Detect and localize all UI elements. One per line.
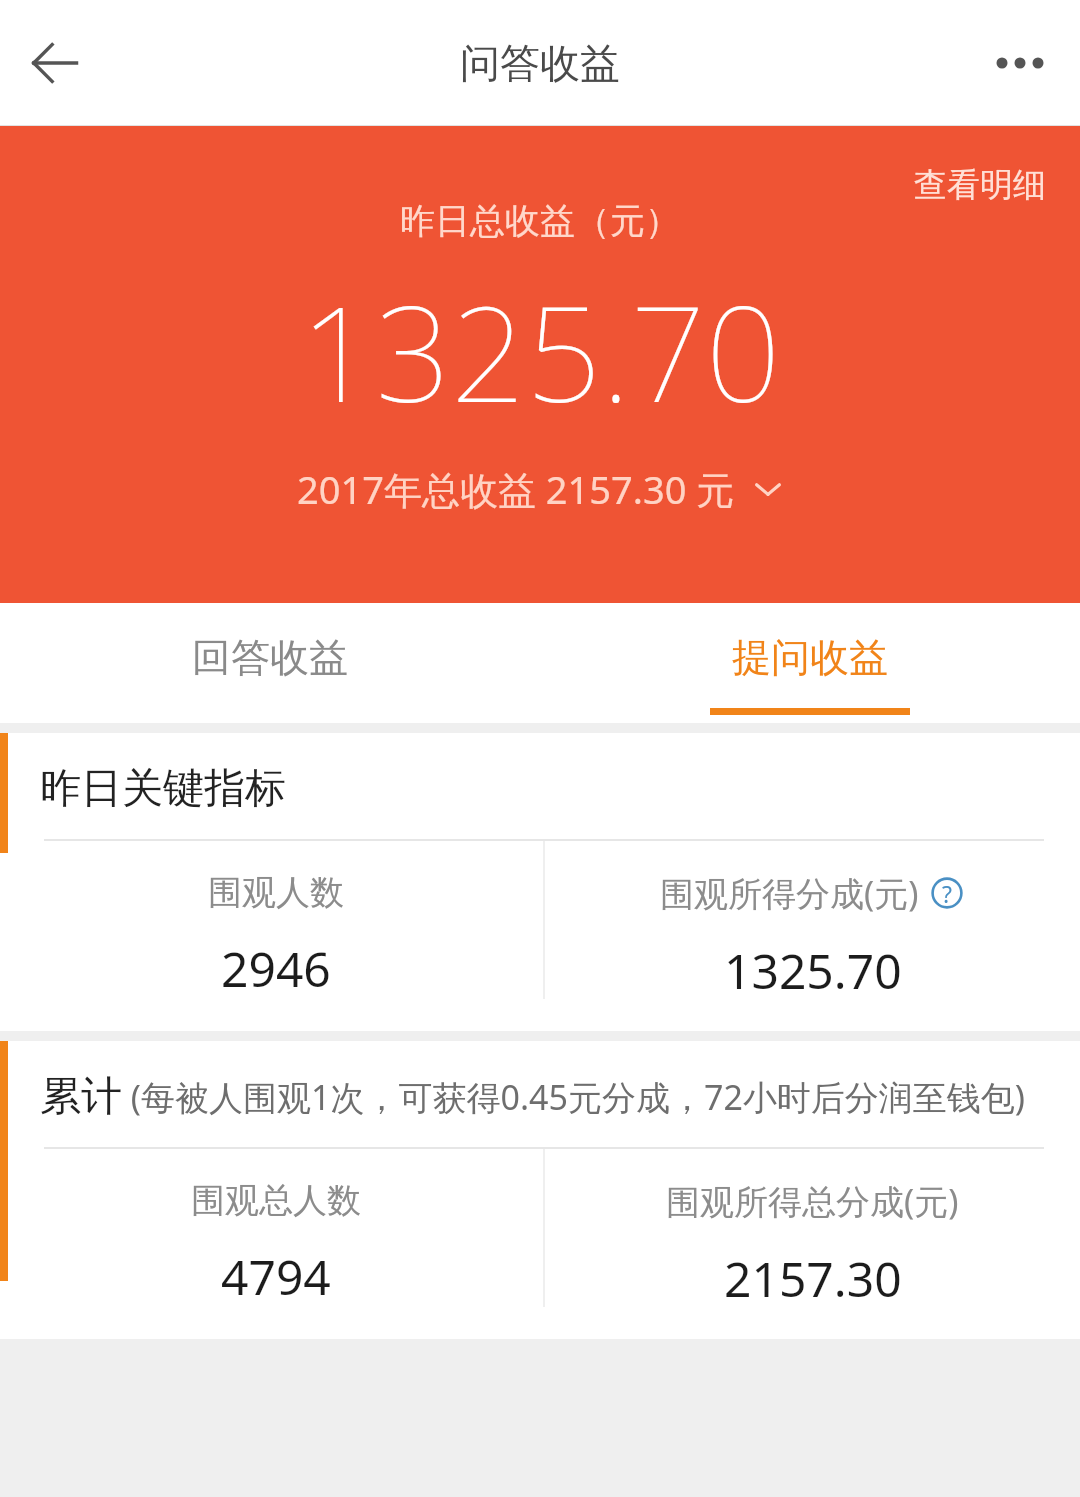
staticText: 查看明细 — [914, 164, 1046, 206]
staticText: 2946 — [221, 936, 331, 1001]
staticText: 昨日总收益（元） — [400, 199, 680, 243]
staticText: 1325.70 — [724, 938, 902, 1003]
staticText: 围观所得分成(元) — [660, 870, 919, 916]
button[interactable]: Help — [929, 875, 965, 911]
button[interactable]: 查看明细 — [894, 150, 1066, 220]
button[interactable]: 提问收益 — [540, 603, 1080, 723]
staticText: 回答收益 — [192, 633, 348, 682]
button[interactable]: 2017年总收益 2157.30 元 — [285, 457, 795, 521]
staticText: 1325.70 — [300, 261, 781, 441]
button[interactable]: 回答收益 — [0, 603, 540, 723]
button[interactable]: 昨日关键指标 — [0, 733, 1080, 1031]
button[interactable]: More options — [978, 21, 1062, 105]
button[interactable]: Back — [14, 23, 94, 103]
staticText: 2157.30 — [724, 1246, 902, 1311]
staticText: 围观人数 — [208, 871, 344, 914]
staticText: 4794 — [221, 1244, 331, 1309]
button[interactable]: 累计 — [0, 1041, 1080, 1339]
staticText: 2017年总收益 2157.30 元 — [297, 463, 735, 515]
staticText: 问答收益 — [460, 38, 620, 88]
staticText: 昨日关键指标 — [40, 763, 286, 815]
staticText: 围观总人数 — [191, 1179, 361, 1222]
staticText: 累计 — [40, 1071, 122, 1123]
staticText: 提问收益 — [732, 633, 888, 682]
staticText: ? — [942, 878, 952, 909]
staticText: (每被人围观1次，可获得0.45元分成，72小时后分润至钱包) — [122, 1074, 1026, 1120]
staticText: 围观所得总分成(元) — [666, 1178, 959, 1224]
